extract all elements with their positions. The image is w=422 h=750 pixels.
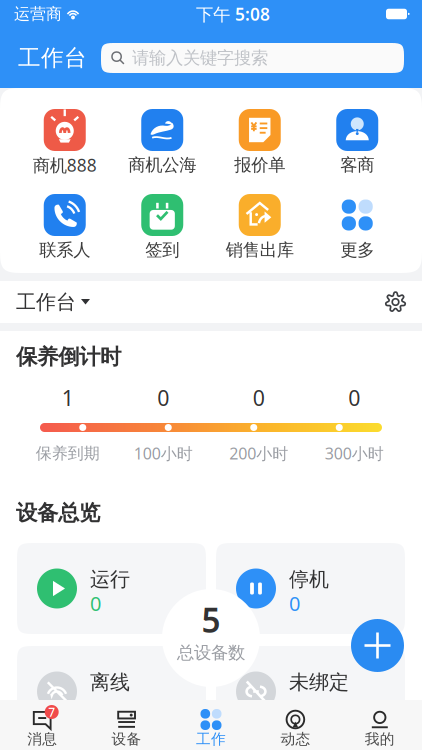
staticText: 设备总览 xyxy=(16,500,100,526)
staticText: 0 xyxy=(157,384,169,412)
staticText: 客商 xyxy=(340,154,374,176)
button[interactable]: 动态 xyxy=(253,700,338,750)
staticText: 保养倒计时 xyxy=(16,344,121,370)
staticText: 工作台 xyxy=(16,290,76,314)
staticText: 商机公海 xyxy=(128,154,196,176)
staticText: 0 xyxy=(348,384,360,412)
staticText: 联系人 xyxy=(39,239,90,261)
staticText: 签到 xyxy=(145,239,179,261)
button[interactable]: 运行 xyxy=(17,543,206,634)
button[interactable]: 商机888 xyxy=(16,109,113,173)
staticText: 7 xyxy=(48,704,55,720)
staticText: 我的 xyxy=(365,730,395,748)
staticText: 保养到期 xyxy=(36,443,100,463)
staticText: 报价单 xyxy=(234,154,285,176)
staticText: 更多 xyxy=(340,239,374,261)
staticText: 下午 5:08 xyxy=(196,2,270,25)
staticText: 总设备数 xyxy=(177,642,245,663)
staticText: 商机888 xyxy=(33,153,97,176)
staticText: 离线 xyxy=(90,670,130,695)
button[interactable]: 未绑定 xyxy=(216,646,405,737)
button[interactable]: 联系人 xyxy=(16,194,113,258)
staticText: 0 xyxy=(289,693,300,720)
button[interactable]: 请输入关键字搜索 xyxy=(101,43,404,73)
staticText: 100小时 xyxy=(134,443,193,464)
staticText: 0 xyxy=(90,590,101,617)
button[interactable]: 离线 xyxy=(17,646,206,737)
staticText: 工作台 xyxy=(18,44,87,72)
staticText: 消息 xyxy=(27,730,57,748)
button[interactable]: 销售出库 xyxy=(211,194,308,258)
button[interactable]: 客商 xyxy=(308,109,406,173)
button[interactable]: 签到 xyxy=(113,194,211,258)
staticText: 设备 xyxy=(112,730,142,748)
staticText: 未绑定 xyxy=(289,670,349,695)
staticText: 300小时 xyxy=(325,443,384,464)
staticText: 工作 xyxy=(196,730,226,748)
staticText: 0 xyxy=(289,590,300,617)
staticText: 5 xyxy=(201,598,220,642)
staticText: 请输入关键字搜索 xyxy=(132,47,268,69)
button[interactable]: 我的 xyxy=(338,700,422,750)
button[interactable]: 工作台 xyxy=(16,290,90,314)
staticText: 0 xyxy=(253,384,265,412)
button[interactable]: 新增 xyxy=(351,619,404,672)
staticText: 销售出库 xyxy=(226,239,294,261)
staticText: 动态 xyxy=(280,730,310,748)
button[interactable]: 工作 xyxy=(169,700,253,750)
staticText: 运营商 xyxy=(14,4,62,24)
button[interactable]: 设置 xyxy=(385,291,406,312)
button[interactable]: 商机公海 xyxy=(113,109,211,173)
button[interactable]: 设备 xyxy=(84,700,169,750)
staticText: 200小时 xyxy=(229,443,288,464)
button[interactable]: 报价单 xyxy=(211,109,308,173)
button[interactable]: 停机 xyxy=(216,543,405,634)
staticText: 1 xyxy=(62,384,74,412)
staticText: 停机 xyxy=(289,567,329,592)
button[interactable]: 更多 xyxy=(308,194,406,258)
button[interactable]: 7 xyxy=(0,700,84,750)
staticText: 运行 xyxy=(90,567,130,592)
